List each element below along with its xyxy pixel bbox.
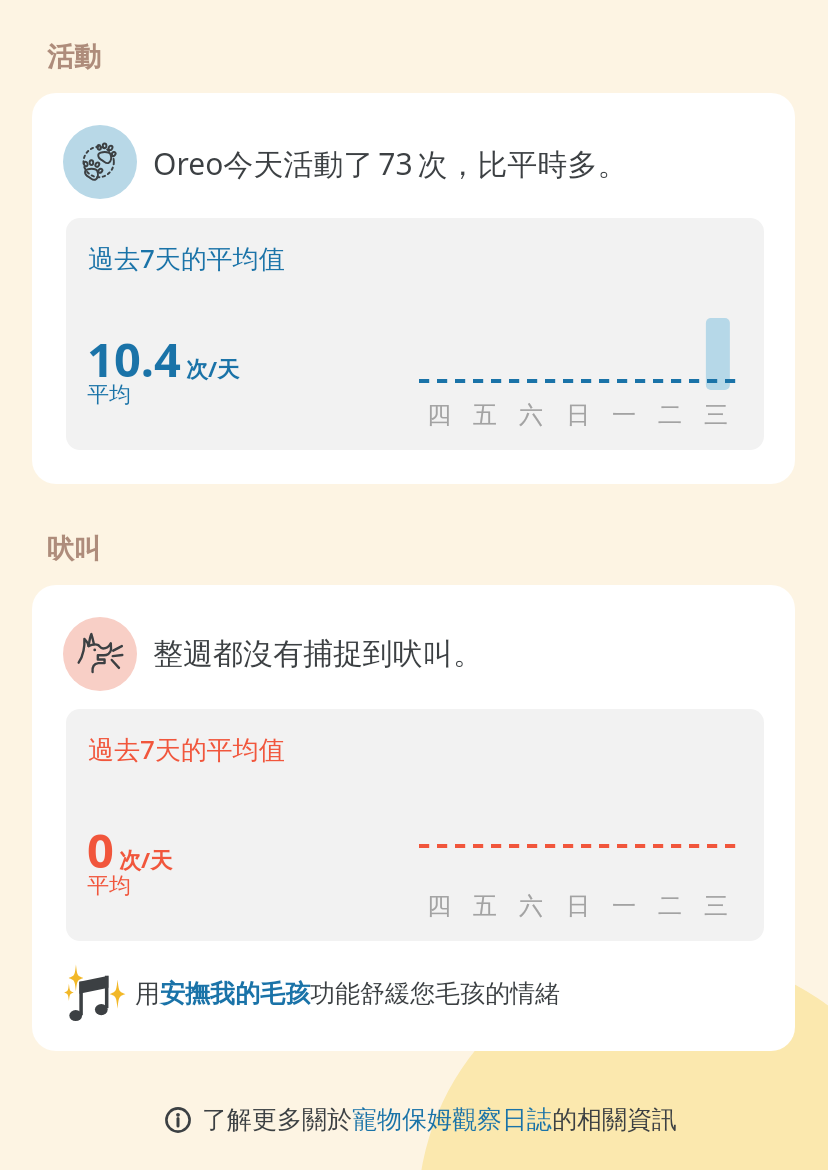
- staticText: 用安撫我的毛孩功能舒緩您毛孩的情緒: [135, 978, 560, 1009]
- staticText: 過去7天的平均值: [88, 240, 285, 276]
- button[interactable]: 整週都沒有捕捉到吠叫。: [32, 585, 795, 1051]
- staticText: 二: [658, 400, 682, 430]
- staticText: 日: [566, 891, 590, 921]
- other: Information: [165, 1107, 191, 1133]
- staticText: 六: [519, 400, 543, 430]
- staticText: Oreo今天活動了 73 次，比平時多。: [153, 143, 628, 184]
- button[interactable]: 用安撫我的毛孩功能舒緩您毛孩的情緒: [32, 958, 795, 1028]
- staticText: 日: [566, 400, 590, 430]
- staticText: 一: [612, 400, 636, 430]
- staticText: 四: [427, 891, 451, 921]
- staticText: 平均: [87, 872, 131, 900]
- staticText: 三: [704, 891, 728, 921]
- staticText: 吠叫: [47, 532, 101, 566]
- staticText: 次/天: [119, 844, 173, 874]
- staticText: 過去7天的平均值: [88, 731, 285, 767]
- staticText: 四: [427, 400, 451, 430]
- staticText: 0: [87, 818, 114, 882]
- staticText: 平均: [87, 381, 131, 409]
- button[interactable]: Information: [161, 1098, 681, 1141]
- staticText: 五: [473, 891, 497, 921]
- button[interactable]: Oreo今天活動了 73 次，比平時多。: [32, 93, 795, 484]
- staticText: 了解更多關於寵物保姆觀察日誌的相關資訊: [202, 1104, 677, 1135]
- staticText: 一: [612, 891, 636, 921]
- staticText: 六: [519, 891, 543, 921]
- staticText: 整週都沒有捕捉到吠叫。: [153, 635, 483, 673]
- staticText: 次/天: [186, 353, 240, 383]
- staticText: 10.4: [87, 327, 181, 391]
- staticText: 三: [704, 400, 728, 430]
- staticText: 五: [473, 400, 497, 430]
- staticText: 二: [658, 891, 682, 921]
- staticText: 活動: [47, 40, 101, 74]
